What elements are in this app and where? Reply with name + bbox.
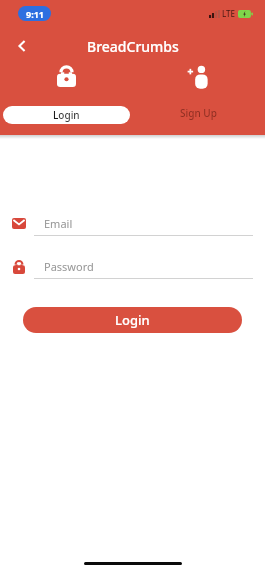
staticText: Login xyxy=(53,108,80,122)
staticText: Email xyxy=(44,216,73,231)
button[interactable]: Email xyxy=(10,211,253,236)
staticText: 9:11 xyxy=(26,8,44,20)
staticText: Password xyxy=(44,259,94,274)
staticText: Sign Up xyxy=(180,106,217,120)
button[interactable]: Password xyxy=(10,254,253,279)
button[interactable]: Login xyxy=(23,307,242,333)
button[interactable]: Login xyxy=(3,106,130,124)
staticText: Login xyxy=(115,311,150,329)
staticText: LTE xyxy=(222,8,236,19)
staticText: BreadCrumbs xyxy=(87,37,179,56)
button[interactable]: Sign Up xyxy=(132,106,265,120)
button[interactable]: Back xyxy=(8,32,36,60)
